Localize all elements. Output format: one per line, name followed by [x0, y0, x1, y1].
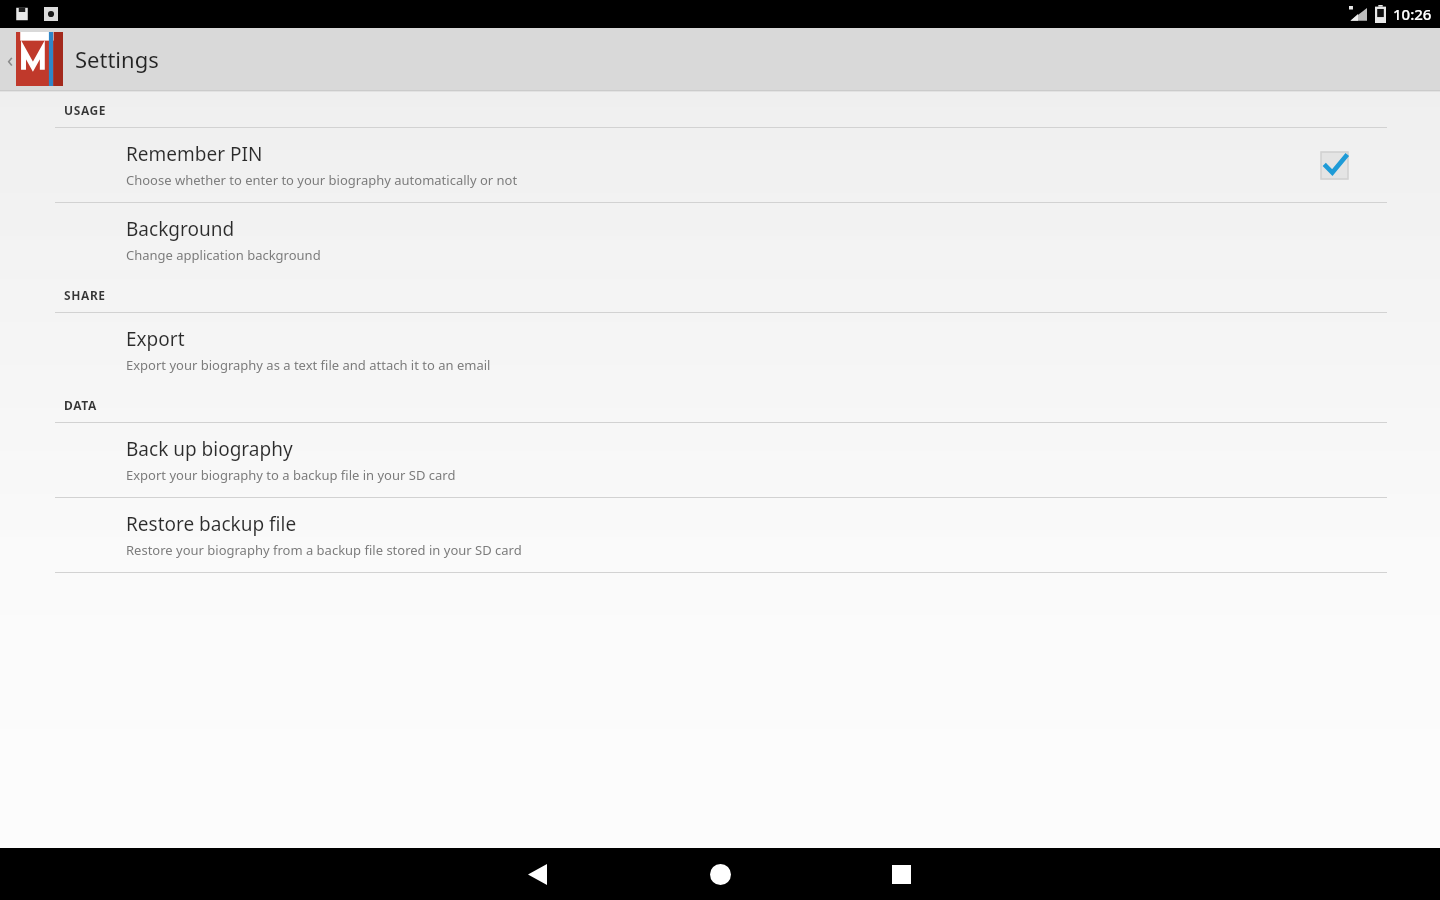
- staticText: Remember PIN: [126, 141, 263, 167]
- staticText: Settings: [75, 44, 159, 74]
- button[interactable]: Home: [696, 850, 744, 898]
- button[interactable]: Recent apps: [877, 850, 925, 898]
- staticText: Background: [126, 216, 235, 242]
- staticText: DATA: [64, 397, 97, 413]
- staticText: Back up biography: [126, 436, 293, 462]
- button[interactable]: Back: [513, 850, 561, 898]
- button[interactable]: Export: [0, 313, 1440, 387]
- staticText: Change application background: [126, 246, 321, 264]
- button[interactable]: Background: [0, 203, 1440, 277]
- staticText: Choose whether to enter to your biograph…: [126, 171, 518, 189]
- staticText: ‹: [7, 46, 14, 73]
- staticText: USAGE: [64, 102, 107, 118]
- staticText: Restore backup file: [126, 511, 297, 537]
- staticText: Restore your biography from a backup fil…: [126, 541, 522, 559]
- button[interactable]: Remember PIN: [0, 128, 1440, 202]
- staticText: Export: [126, 326, 185, 352]
- staticText: 10:26: [1393, 4, 1432, 24]
- button[interactable]: Navigate up: [2, 28, 64, 90]
- button[interactable]: Back up biography: [0, 423, 1440, 497]
- button[interactable]: Remember PIN checkbox: [1314, 145, 1354, 185]
- staticText: Export your biography as a text file and…: [126, 356, 491, 374]
- staticText: Export your biography to a backup file i…: [126, 466, 456, 484]
- button[interactable]: Restore backup file: [0, 498, 1440, 572]
- staticText: SHARE: [64, 287, 106, 303]
